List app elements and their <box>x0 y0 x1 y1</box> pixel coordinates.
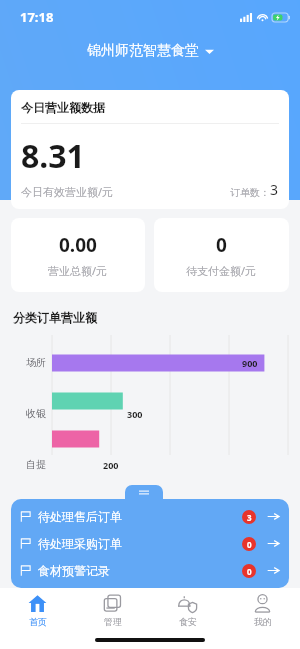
button[interactable]: 0 <box>154 218 289 292</box>
staticText: 场所 <box>0 356 46 369</box>
staticText: 3 <box>247 512 252 523</box>
staticText: 待支付金额/元 <box>186 263 257 278</box>
staticText: 200 <box>103 459 119 471</box>
staticText: 900 <box>242 357 258 369</box>
button[interactable]: 食安 <box>150 588 225 632</box>
staticText: 0 <box>216 232 227 258</box>
staticText: 0 <box>247 566 252 577</box>
staticText: 0.00 <box>59 232 97 258</box>
staticText: 300 <box>127 408 143 420</box>
button[interactable]: 管理 <box>75 588 150 632</box>
staticText: 分类订单营业额 <box>13 310 97 325</box>
button[interactable]: 待处理采购订单 <box>11 530 289 557</box>
staticText: 我的 <box>254 616 272 627</box>
staticText: 首页 <box>29 616 47 627</box>
staticText: 锦州师范智慧食堂 <box>87 42 199 60</box>
button[interactable]: 我的 <box>225 588 300 632</box>
button[interactable]: 锦州师范智慧食堂 <box>0 34 300 68</box>
staticText: 食材预警记录 <box>38 563 110 578</box>
button[interactable]: 今日营业额数据 <box>11 90 289 209</box>
staticText: 管理 <box>104 616 122 627</box>
staticText: 食安 <box>179 616 197 627</box>
staticText: 8.31 <box>21 134 85 178</box>
staticText: 今日有效营业额/元 <box>21 184 114 199</box>
staticText: 17:18 <box>20 8 54 26</box>
button[interactable]: 收起面板 <box>125 485 163 499</box>
staticText: 收银 <box>0 407 46 420</box>
button[interactable]: 食材预警记录 <box>11 557 289 584</box>
staticText: 3 <box>270 180 279 199</box>
button[interactable]: 0.00 <box>11 218 145 292</box>
staticText: 订单数： <box>230 186 270 199</box>
staticText: 今日营业额数据 <box>21 100 105 115</box>
staticText: 自提 <box>0 458 46 471</box>
staticText: 待处理售后订单 <box>38 509 122 524</box>
staticText: 待处理采购订单 <box>38 536 122 551</box>
staticText: 0 <box>247 539 252 550</box>
staticText: 营业总额/元 <box>48 263 108 278</box>
button[interactable]: 待处理售后订单 <box>11 503 289 530</box>
button[interactable]: 首页 <box>0 588 75 632</box>
